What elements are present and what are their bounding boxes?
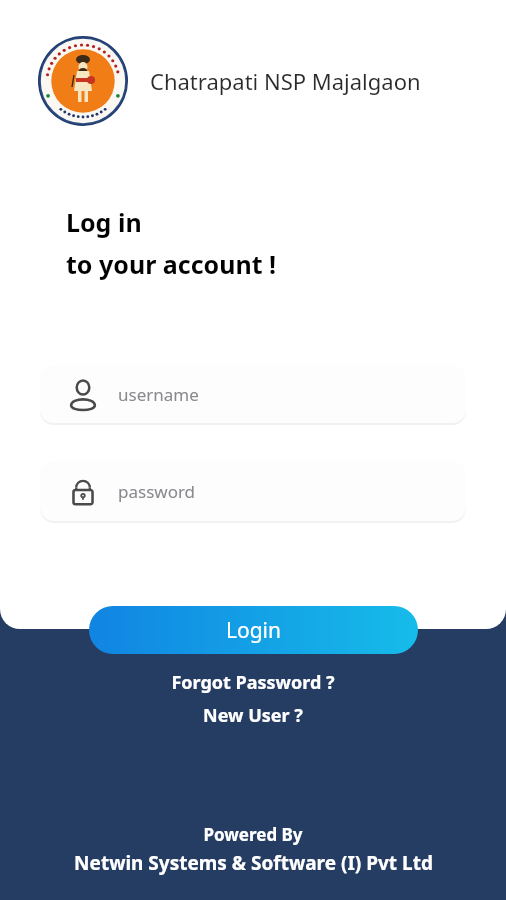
staticText: username [118, 383, 199, 406]
staticText: Netwin Systems & Software (I) Pvt Ltd [74, 850, 433, 876]
button[interactable]: password [40, 461, 466, 521]
button[interactable]: username [40, 365, 466, 423]
staticText: Log in [66, 205, 142, 239]
button[interactable]: Login [89, 606, 418, 654]
staticText: Powered By [203, 823, 303, 846]
staticText: New User ? [203, 703, 303, 728]
staticText: Chatrapati NSP Majalgaon [150, 66, 421, 96]
staticText: password [118, 480, 196, 503]
button[interactable]: Forgot Password ? [161, 668, 345, 697]
staticText: to your account ! [66, 247, 277, 281]
button[interactable]: New User ? [193, 701, 313, 730]
other: College emblem [38, 36, 128, 126]
staticText: Forgot Password ? [171, 670, 335, 695]
staticText: Login [226, 616, 282, 645]
